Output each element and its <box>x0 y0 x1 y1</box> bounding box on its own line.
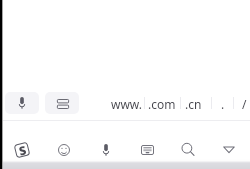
button[interactable]: / <box>233 92 250 115</box>
button[interactable]: .cn <box>176 92 211 115</box>
staticText: S <box>17 141 28 159</box>
staticText: .com <box>148 96 176 112</box>
button[interactable]: Sogou input <box>6 134 38 166</box>
button[interactable]: www. <box>105 92 148 115</box>
button[interactable]: Voice input <box>5 92 39 114</box>
button[interactable]: Emoji <box>48 134 80 166</box>
button[interactable]: Hide keyboard <box>213 134 245 166</box>
button[interactable]: .com <box>144 92 180 115</box>
button[interactable]: Keyboard <box>131 134 163 166</box>
button[interactable]: Voice input <box>90 134 122 166</box>
button[interactable]: . <box>212 92 234 115</box>
staticText: / <box>242 96 247 112</box>
staticText: www. <box>111 96 143 112</box>
staticText: . <box>221 96 225 112</box>
button[interactable]: Search <box>172 134 204 166</box>
button[interactable]: Switch keyboard layout <box>45 92 79 114</box>
staticText: .cn <box>185 96 202 112</box>
